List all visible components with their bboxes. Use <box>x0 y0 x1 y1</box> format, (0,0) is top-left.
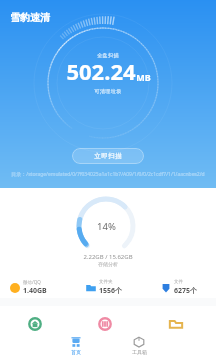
staticText: 1556个 <box>99 286 123 296</box>
staticText: 14% <box>97 220 116 233</box>
staticText: 立即扫描 <box>94 152 122 160</box>
staticText: 文件 <box>174 279 183 285</box>
staticText: 雪豹速清 <box>10 11 50 24</box>
button[interactable]: 首页 <box>62 336 90 355</box>
staticText: 1.40GB <box>23 286 47 296</box>
button[interactable]: 微信清理 <box>28 317 42 331</box>
staticText: 全盘扫描 <box>0 52 216 58</box>
staticText: 微信/QQ <box>23 279 41 285</box>
staticText: 可清理垃圾 <box>0 88 216 94</box>
staticText: 2.22GB / 15.62GB <box>0 253 216 261</box>
staticText: MB <box>136 71 151 83</box>
staticText: 存储分析 <box>0 261 216 267</box>
button[interactable]: 工具箱 <box>125 336 153 355</box>
button[interactable]: 短视频清理 <box>98 317 112 331</box>
staticText: 文件夹 <box>99 279 113 285</box>
staticText: 目录：/storage/emulated/0/7f034025a1a1c1b7/… <box>0 171 216 178</box>
button[interactable]: 微信/QQ <box>10 279 47 296</box>
button[interactable]: 文件 <box>161 279 198 296</box>
staticText: 6275个 <box>174 286 198 296</box>
button[interactable]: 立即扫描 <box>72 148 144 164</box>
staticText: 502.24 <box>66 56 136 86</box>
button[interactable]: 文件夹 <box>86 279 123 296</box>
button[interactable]: 文件管理 <box>169 317 183 331</box>
staticText: 首页 <box>71 349 81 355</box>
staticText: 工具箱 <box>132 349 147 355</box>
